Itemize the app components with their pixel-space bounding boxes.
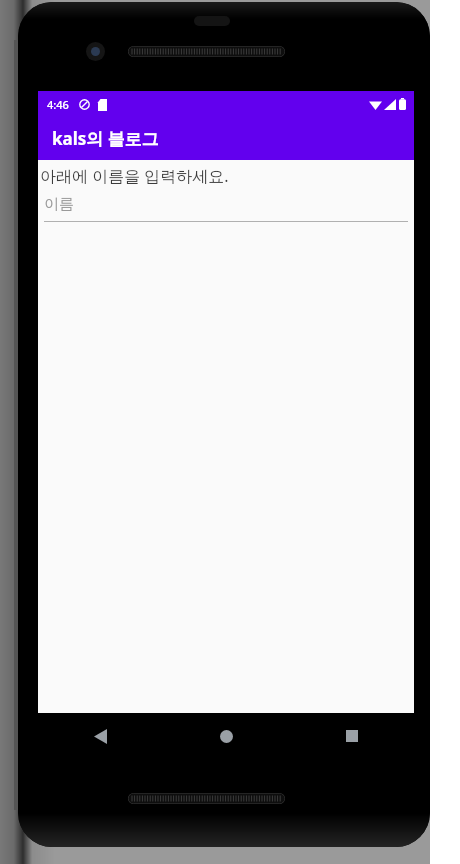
staticText: kals의 블로그 (52, 127, 159, 150)
staticText: 이름 (44, 195, 74, 214)
button[interactable]: Home (163, 713, 289, 759)
button[interactable]: Back (38, 713, 163, 759)
button[interactable]: 이름 (44, 195, 408, 222)
staticText: 아래에 이름을 입력하세요. (40, 165, 229, 187)
staticText: 4:46 (47, 97, 69, 112)
button[interactable]: kals의 블로그 (38, 117, 414, 160)
button[interactable]: Recent apps (289, 713, 414, 759)
